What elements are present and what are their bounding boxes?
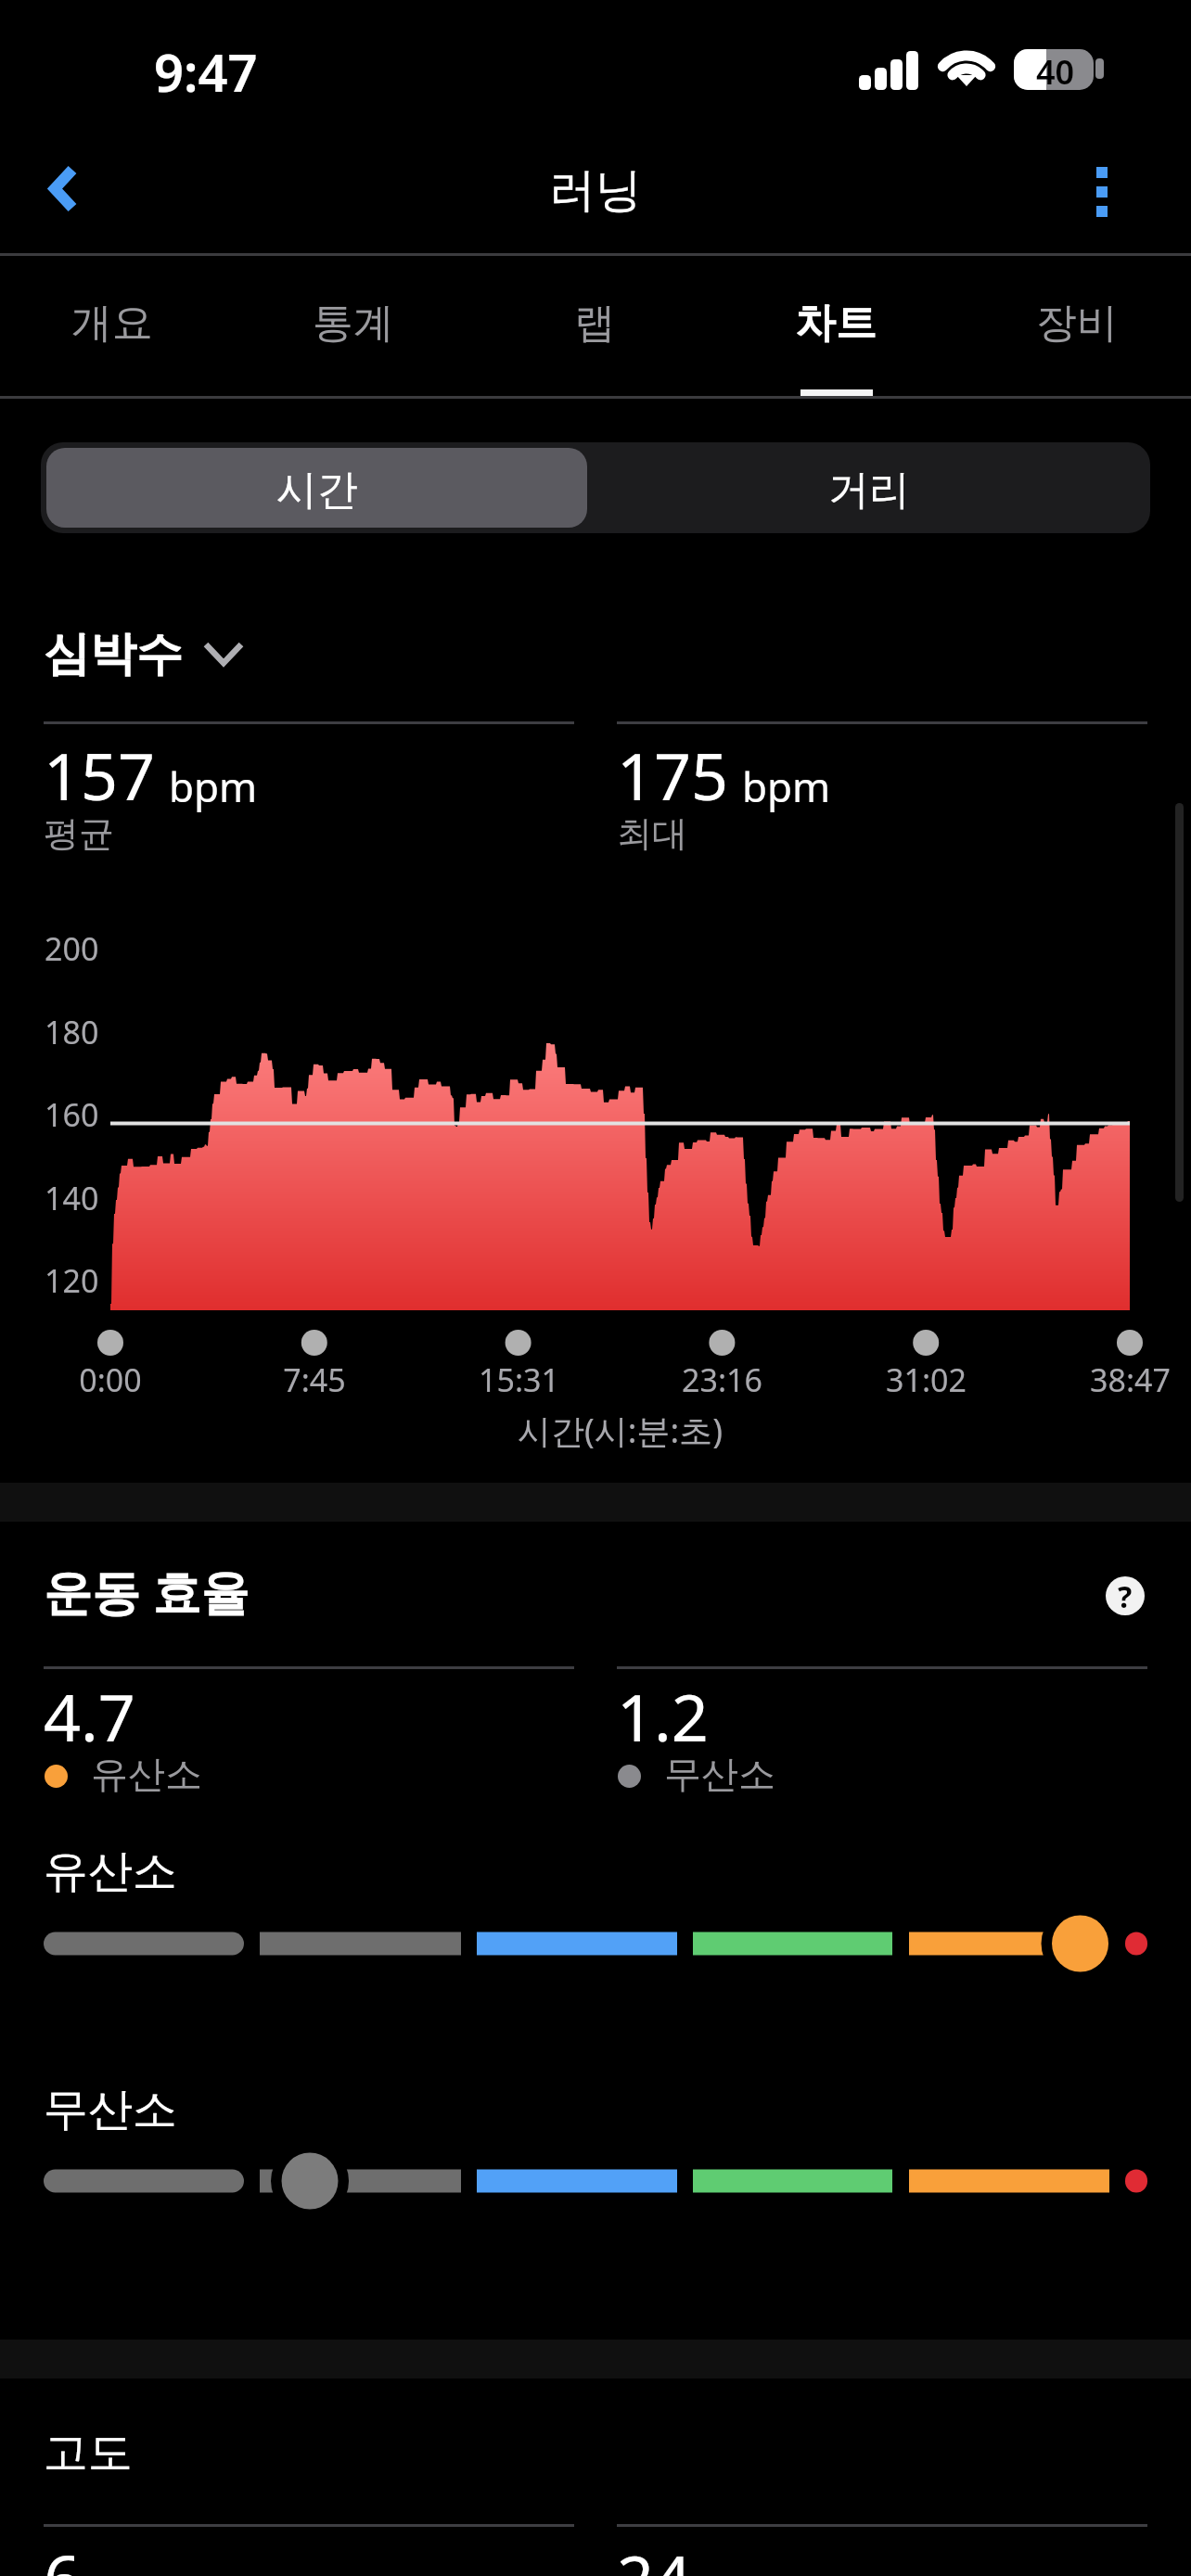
staticText: 38:47 [1090, 1358, 1171, 1401]
staticText: 140 [45, 1177, 99, 1219]
staticText: 4.7 [44, 1672, 135, 1760]
staticText: 장비 [1036, 298, 1118, 349]
staticText: 6 [44, 2533, 82, 2576]
staticText: 통계 [313, 298, 394, 349]
button[interactable]: 통계 [235, 239, 472, 393]
button[interactable]: 개요 [0, 239, 231, 393]
staticText: 175 [617, 731, 729, 819]
staticText: 심박수 [44, 625, 183, 683]
staticText: 무산소 [664, 1751, 775, 1797]
staticText: 유산소 [91, 1751, 202, 1797]
staticText: 시간(시:분:초) [518, 1408, 723, 1453]
staticText: 160 [45, 1093, 99, 1136]
staticText: 15:31 [479, 1358, 559, 1401]
button[interactable]: 장비 [958, 239, 1191, 393]
staticText: 0:00 [79, 1358, 142, 1401]
button[interactable]: Back [7, 133, 119, 244]
staticText: 1.2 [617, 1672, 709, 1760]
staticText: 180 [45, 1011, 99, 1053]
staticText: 거리 [828, 465, 910, 516]
button[interactable]: 시간 [46, 448, 587, 528]
button[interactable]: More options [1046, 136, 1158, 248]
staticText: 7:45 [283, 1358, 346, 1401]
staticText: 러닝 [549, 161, 642, 220]
staticText: 평균 [44, 811, 114, 856]
button[interactable]: 심박수 [44, 617, 244, 685]
staticText: 고도 [44, 2425, 133, 2480]
staticText: 유산소 [44, 1843, 177, 1899]
staticText: 157 [44, 731, 156, 819]
staticText: 시간 [276, 465, 358, 516]
staticText: 운동 효율 [44, 1558, 250, 1624]
staticText: 31:02 [886, 1358, 967, 1401]
staticText: 23:16 [682, 1358, 762, 1401]
staticText: 무산소 [44, 2082, 177, 2137]
staticText: 40 [1036, 49, 1075, 90]
staticText: 9:47 [154, 36, 258, 107]
button[interactable]: Help [1106, 1576, 1145, 1615]
staticText: bpm [169, 759, 258, 814]
staticText: 랩 [574, 298, 615, 349]
button[interactable]: 랩 [476, 239, 713, 393]
staticText: 120 [45, 1259, 99, 1302]
staticText: ? [1118, 1576, 1133, 1615]
staticText: 24 [617, 2533, 692, 2576]
button[interactable]: 거리 [593, 448, 1145, 528]
staticText: 200 [45, 927, 99, 970]
button[interactable]: 차트 [717, 239, 954, 393]
staticText: 차트 [795, 298, 877, 349]
staticText: 개요 [71, 298, 153, 349]
staticText: 최대 [617, 811, 687, 856]
staticText: bpm [742, 759, 831, 814]
